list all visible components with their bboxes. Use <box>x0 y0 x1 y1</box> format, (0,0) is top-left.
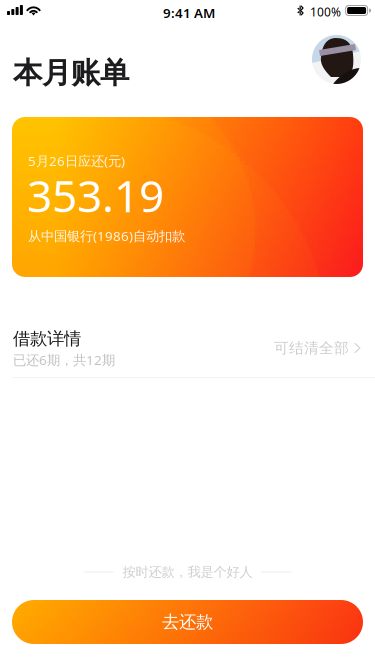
button[interactable]: Profile <box>312 35 361 84</box>
staticText: 100% <box>310 4 341 20</box>
button[interactable]: 去还款 <box>12 600 363 644</box>
staticText: 已还6期，共12期 <box>13 351 115 369</box>
staticText: 353.19 <box>27 166 164 224</box>
staticText: 从中国银行(1986)自动扣款 <box>28 227 185 245</box>
staticText: 5月26日应还(元) <box>28 152 125 170</box>
staticText: 借款详情 <box>13 328 81 349</box>
staticText: 按时还款，我是个好人 <box>122 564 252 580</box>
staticText: 本月账单 <box>13 55 129 91</box>
staticText: 去还款 <box>162 611 213 633</box>
button[interactable]: 借款详情 <box>0 322 375 377</box>
staticText: 可结清全部 <box>274 339 349 357</box>
staticText: 9:41 AM <box>163 4 215 22</box>
